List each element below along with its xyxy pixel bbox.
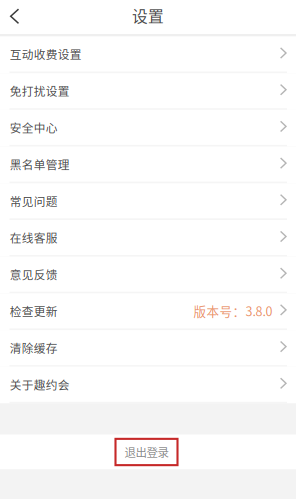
button[interactable]: Back [0,0,33,34]
staticText: 退出登录 [124,444,168,460]
button[interactable]: 检查更新 [0,293,296,330]
staticText: 检查更新 [10,302,58,319]
staticText: 清除缓存 [10,339,58,356]
staticText: 常见问题 [10,192,58,209]
button[interactable]: 意见反馈 [0,257,296,293]
button[interactable]: 安全中心 [0,110,296,147]
staticText: 意见反馈 [10,266,58,283]
button[interactable]: 互动收费设置 [0,36,296,73]
button[interactable]: 常见问题 [0,183,296,220]
button[interactable]: 在线客服 [0,220,296,257]
button[interactable]: 退出登录 [115,439,177,465]
staticText: 互动收费设置 [10,46,82,62]
button[interactable]: 关于趣约会 [0,367,296,403]
staticText: 在线客服 [10,229,58,246]
staticText: 黑名单管理 [10,156,70,173]
staticText: 免打扰设置 [10,82,70,99]
button[interactable]: 免打扰设置 [0,73,296,110]
staticText: 版本号：3.8.0 [194,302,273,320]
staticText: 设置 [132,4,164,27]
button[interactable]: 黑名单管理 [0,147,296,183]
button[interactable]: 清除缓存 [0,330,296,367]
staticText: 安全中心 [10,119,58,136]
staticText: 关于趣约会 [10,376,70,393]
